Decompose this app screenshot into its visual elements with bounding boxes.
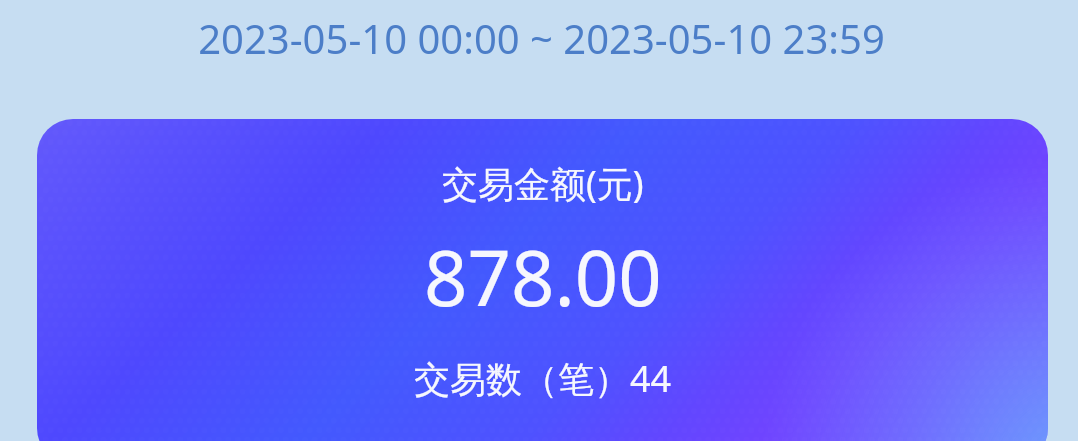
button[interactable]: 2023-05-10 00:00 ~ 2023-05-10 23:59: [5, 11, 1078, 65]
staticText: 交易数（笔）44: [414, 354, 672, 403]
button[interactable]: Transaction summary: [37, 119, 1048, 441]
staticText: 交易金额(元): [442, 159, 644, 208]
staticText: 878.00: [424, 225, 662, 329]
staticText: 2023-05-10 00:00 ~ 2023-05-10 23:59: [198, 11, 885, 65]
